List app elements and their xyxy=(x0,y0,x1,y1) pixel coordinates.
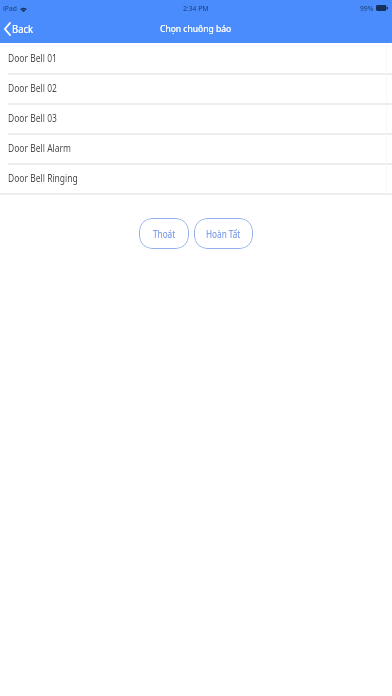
staticText: Chọn chuông báo xyxy=(160,22,232,35)
button[interactable]: Door Bell 03 xyxy=(0,103,392,133)
staticText: iPad xyxy=(3,3,17,13)
staticText: Back xyxy=(12,22,34,36)
button[interactable]: Back xyxy=(0,22,44,37)
staticText: Door Bell Ringing xyxy=(8,171,79,185)
staticText: Door Bell 03 xyxy=(8,111,57,125)
staticText: Thoát xyxy=(153,227,176,241)
button[interactable]: Door Bell Ringing xyxy=(0,163,392,193)
button[interactable]: Door Bell 01 xyxy=(0,43,392,73)
staticText: Hoàn Tất xyxy=(206,227,240,241)
button[interactable]: Door Bell 02 xyxy=(0,73,392,103)
button[interactable]: Hoàn Tất xyxy=(194,218,253,249)
staticText: 2:34 PM xyxy=(183,3,209,13)
staticText: Door Bell 01 xyxy=(8,51,57,65)
other: Battery 99 percent xyxy=(376,5,388,11)
staticText: Door Bell Alarm xyxy=(8,141,72,155)
staticText: Door Bell 02 xyxy=(8,81,57,95)
button[interactable]: Thoát xyxy=(139,218,189,249)
other: Wi-Fi signal xyxy=(20,5,27,12)
staticText: 99% xyxy=(360,3,373,13)
button[interactable]: Door Bell Alarm xyxy=(0,133,392,163)
